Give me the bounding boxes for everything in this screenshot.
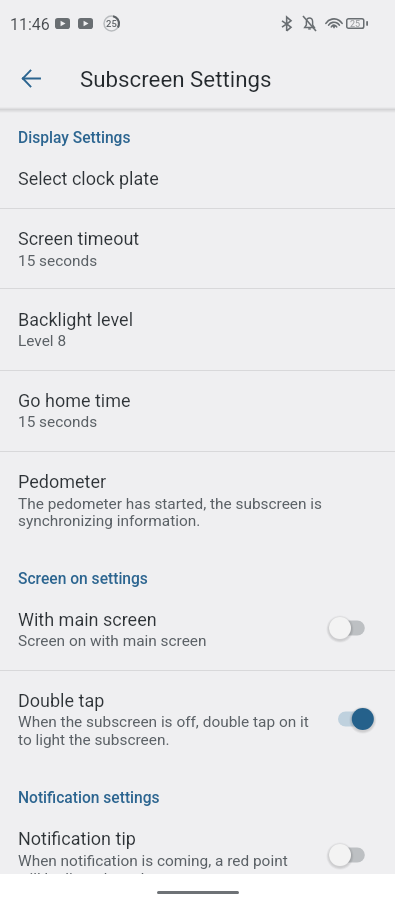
staticText: Screen timeout xyxy=(18,228,140,249)
staticText: Level 8 xyxy=(18,332,67,350)
staticText: Screen on with main screen xyxy=(18,632,207,650)
staticText: Double tap xyxy=(18,690,105,711)
button[interactable] xyxy=(0,114,395,208)
staticText: Subscreen Settings xyxy=(80,66,272,92)
button[interactable] xyxy=(0,594,395,670)
staticText: Go home time xyxy=(18,390,131,411)
staticText: When notification is coming, a red point xyxy=(18,852,288,870)
button[interactable] xyxy=(0,671,395,771)
staticText: Display Settings xyxy=(18,129,131,147)
staticText: When the subscreen is off, double tap on… xyxy=(18,713,309,731)
button[interactable] xyxy=(0,371,395,451)
button[interactable] xyxy=(0,813,395,874)
staticText: synchronizing information. xyxy=(18,512,201,530)
staticText: 15 seconds xyxy=(18,413,98,431)
staticText: 25 xyxy=(106,18,117,29)
staticText: Screen on settings xyxy=(18,570,148,588)
button[interactable]: Back xyxy=(12,59,50,97)
staticText: Notification tip xyxy=(18,828,136,849)
button[interactable] xyxy=(0,289,395,370)
staticText: With main screen xyxy=(18,609,157,630)
staticText: The pedometer has started, the subscreen… xyxy=(18,495,323,513)
staticText: to light the subscreen. xyxy=(18,731,170,749)
button[interactable] xyxy=(0,452,395,553)
button[interactable]: Switch on xyxy=(330,698,382,740)
staticText: Select clock plate xyxy=(18,168,159,189)
staticText: 25 xyxy=(350,19,361,30)
button[interactable]: Switch off xyxy=(321,607,373,649)
staticText: 11:46 xyxy=(10,15,50,34)
staticText: Backlight level xyxy=(18,309,134,330)
staticText: will be lit at the sub-screen. xyxy=(18,870,204,874)
staticText: Pedometer xyxy=(18,471,107,492)
staticText: 15 seconds xyxy=(18,252,98,270)
button[interactable]: Switch off xyxy=(321,834,373,874)
button[interactable] xyxy=(0,209,395,289)
staticText: Notification settings xyxy=(18,789,160,807)
